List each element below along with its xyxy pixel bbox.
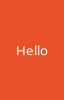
staticText: Hello [16, 41, 48, 59]
